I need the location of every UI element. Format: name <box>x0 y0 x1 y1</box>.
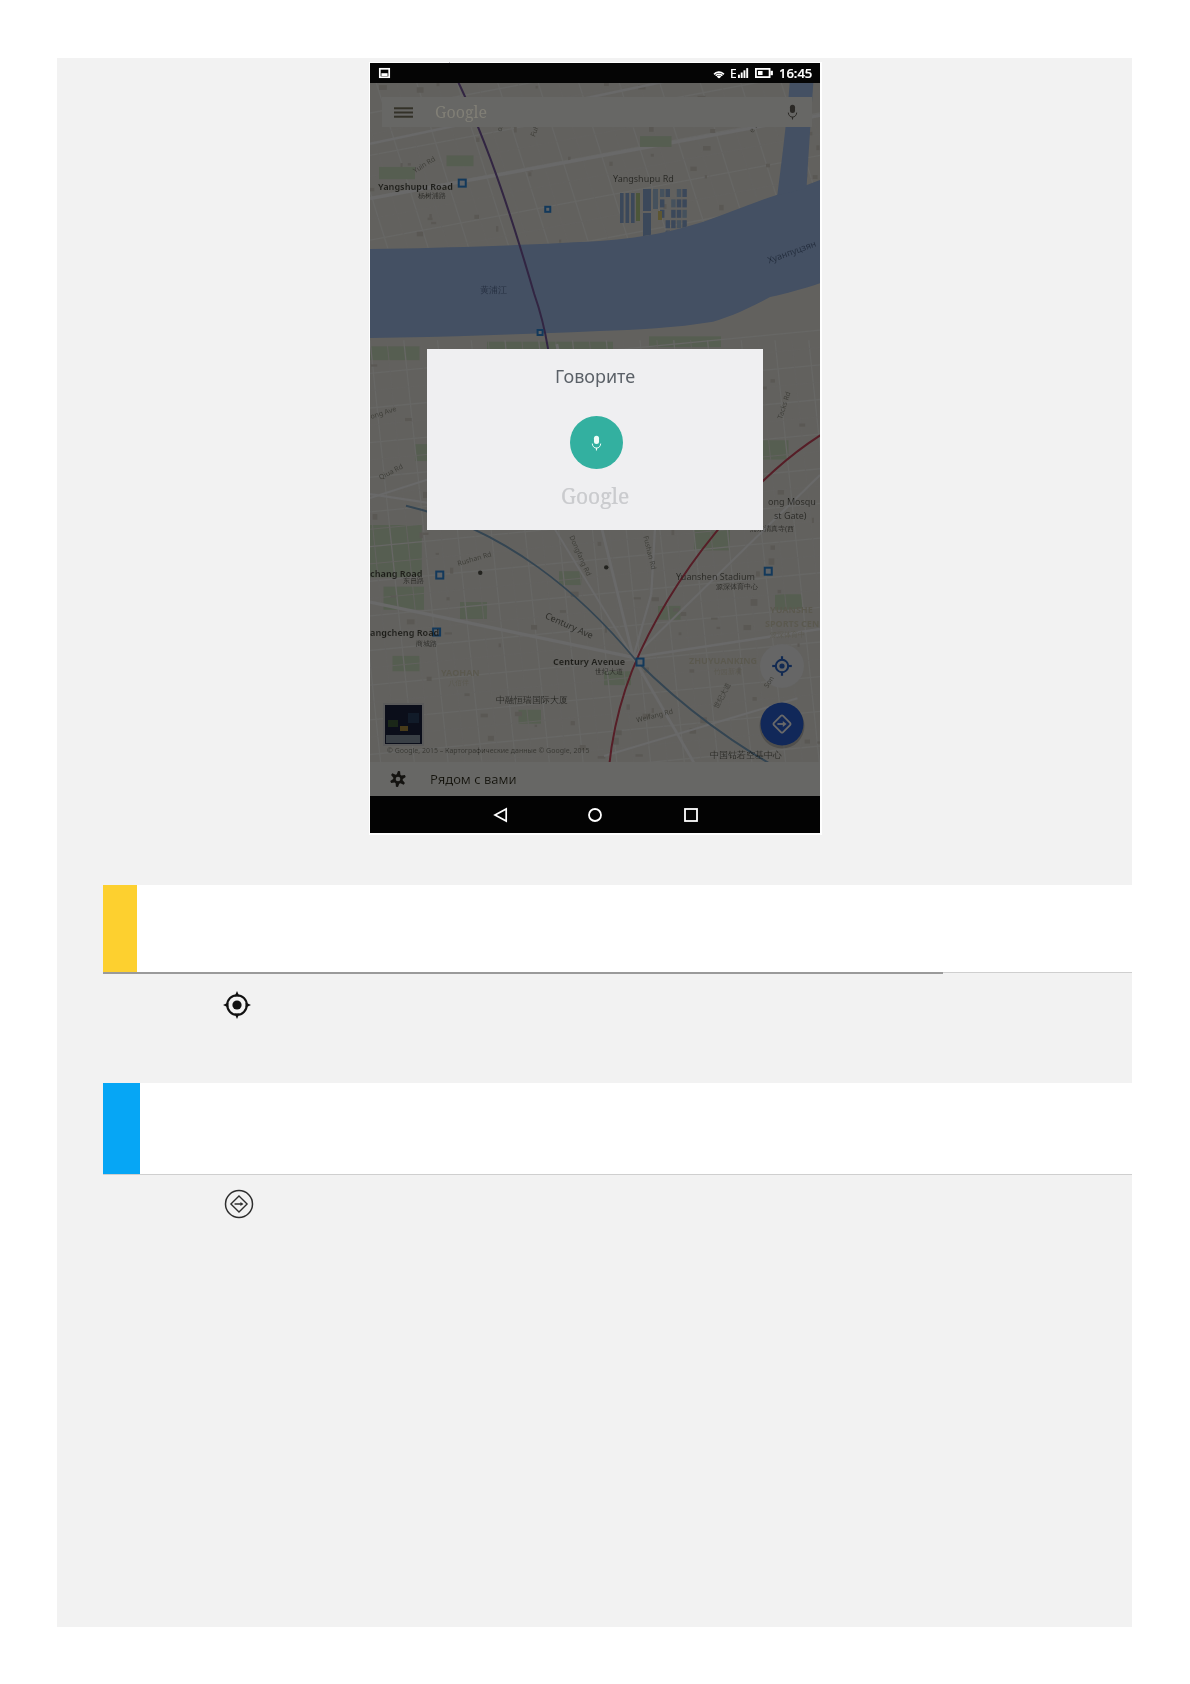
staticText: 世纪大道 <box>595 667 623 676</box>
staticText: Google <box>561 482 630 511</box>
staticText: 竹园新村 <box>714 667 742 676</box>
staticText: Century Ave <box>544 609 596 641</box>
staticText: 东昌路 <box>403 576 424 585</box>
staticText: e Rd <box>747 117 764 135</box>
staticText: ong Mosqu <box>768 495 816 507</box>
staticText: st Gate) <box>774 509 807 521</box>
staticText: ong Ave <box>369 404 398 422</box>
staticText: angcheng Road <box>370 626 440 638</box>
button[interactable]: Menu <box>388 97 418 127</box>
staticText: Yangshupu Road <box>378 180 453 192</box>
button[interactable]: Satellite view <box>383 703 424 746</box>
staticText: Qiua Rd <box>377 461 406 483</box>
staticText: Century Avenue <box>553 655 626 667</box>
staticText: Rushan Rd <box>456 549 494 569</box>
staticText: ZHUYUANKING <box>689 654 758 666</box>
staticText: 中国钴若空基中心 <box>710 749 782 760</box>
staticText: Google <box>435 101 488 123</box>
staticText: Weifang Rd <box>635 707 675 725</box>
staticText: 源深体育中心 <box>716 582 758 591</box>
staticText: 杨树浦路 <box>418 191 446 200</box>
staticText: ong Rd <box>494 107 511 133</box>
staticText: 16:45 <box>779 64 813 82</box>
staticText: chang Road <box>370 567 423 579</box>
button[interactable]: My location <box>760 644 804 688</box>
button[interactable]: Directions <box>218 1183 260 1225</box>
staticText: YAOHAN <box>441 666 480 678</box>
button[interactable]: Menu <box>382 97 812 127</box>
staticText: Fushan Rd <box>640 535 659 571</box>
staticText: 黄浦江 <box>480 284 507 295</box>
button[interactable]: Voice search <box>777 97 807 127</box>
button[interactable]: Recents <box>669 796 713 833</box>
staticText: E <box>730 65 737 81</box>
button[interactable]: Directions <box>761 703 804 746</box>
staticText: © Google, 2015 – Картографические данные… <box>387 746 590 756</box>
staticText: 八佰伴 <box>448 678 469 687</box>
staticText: Son <box>762 674 777 690</box>
button[interactable]: Microphone <box>570 416 623 469</box>
staticText: Dongfang Rd <box>566 534 593 578</box>
button[interactable]: Home <box>573 796 617 833</box>
staticText: Yuin Rd <box>411 154 438 176</box>
staticText: Говорите <box>555 364 636 389</box>
button[interactable]: Back <box>478 796 522 833</box>
staticText: 浦东清真寺(西 <box>750 524 795 534</box>
staticText: Fuhu St <box>528 111 547 138</box>
staticText: Tacks Rd <box>775 390 794 420</box>
staticText: 源深体育中 <box>770 630 805 639</box>
staticText: Рядом с вами <box>430 770 517 788</box>
staticText: YUANSHE <box>770 603 813 615</box>
button[interactable]: Рядом с вами <box>370 762 820 796</box>
staticText: Yangshupu Rd <box>613 172 674 184</box>
staticText: 商城路 <box>416 639 437 648</box>
staticText: SPORTS CEN <box>765 617 820 629</box>
staticText: Хуанпуцзян <box>765 237 817 265</box>
staticText: Yuanshen Stadium <box>676 570 755 582</box>
button[interactable]: My location <box>216 984 258 1026</box>
staticText: 世纪大道 <box>711 681 733 710</box>
staticText: 中融恒瑞国际大厦 <box>496 694 568 705</box>
